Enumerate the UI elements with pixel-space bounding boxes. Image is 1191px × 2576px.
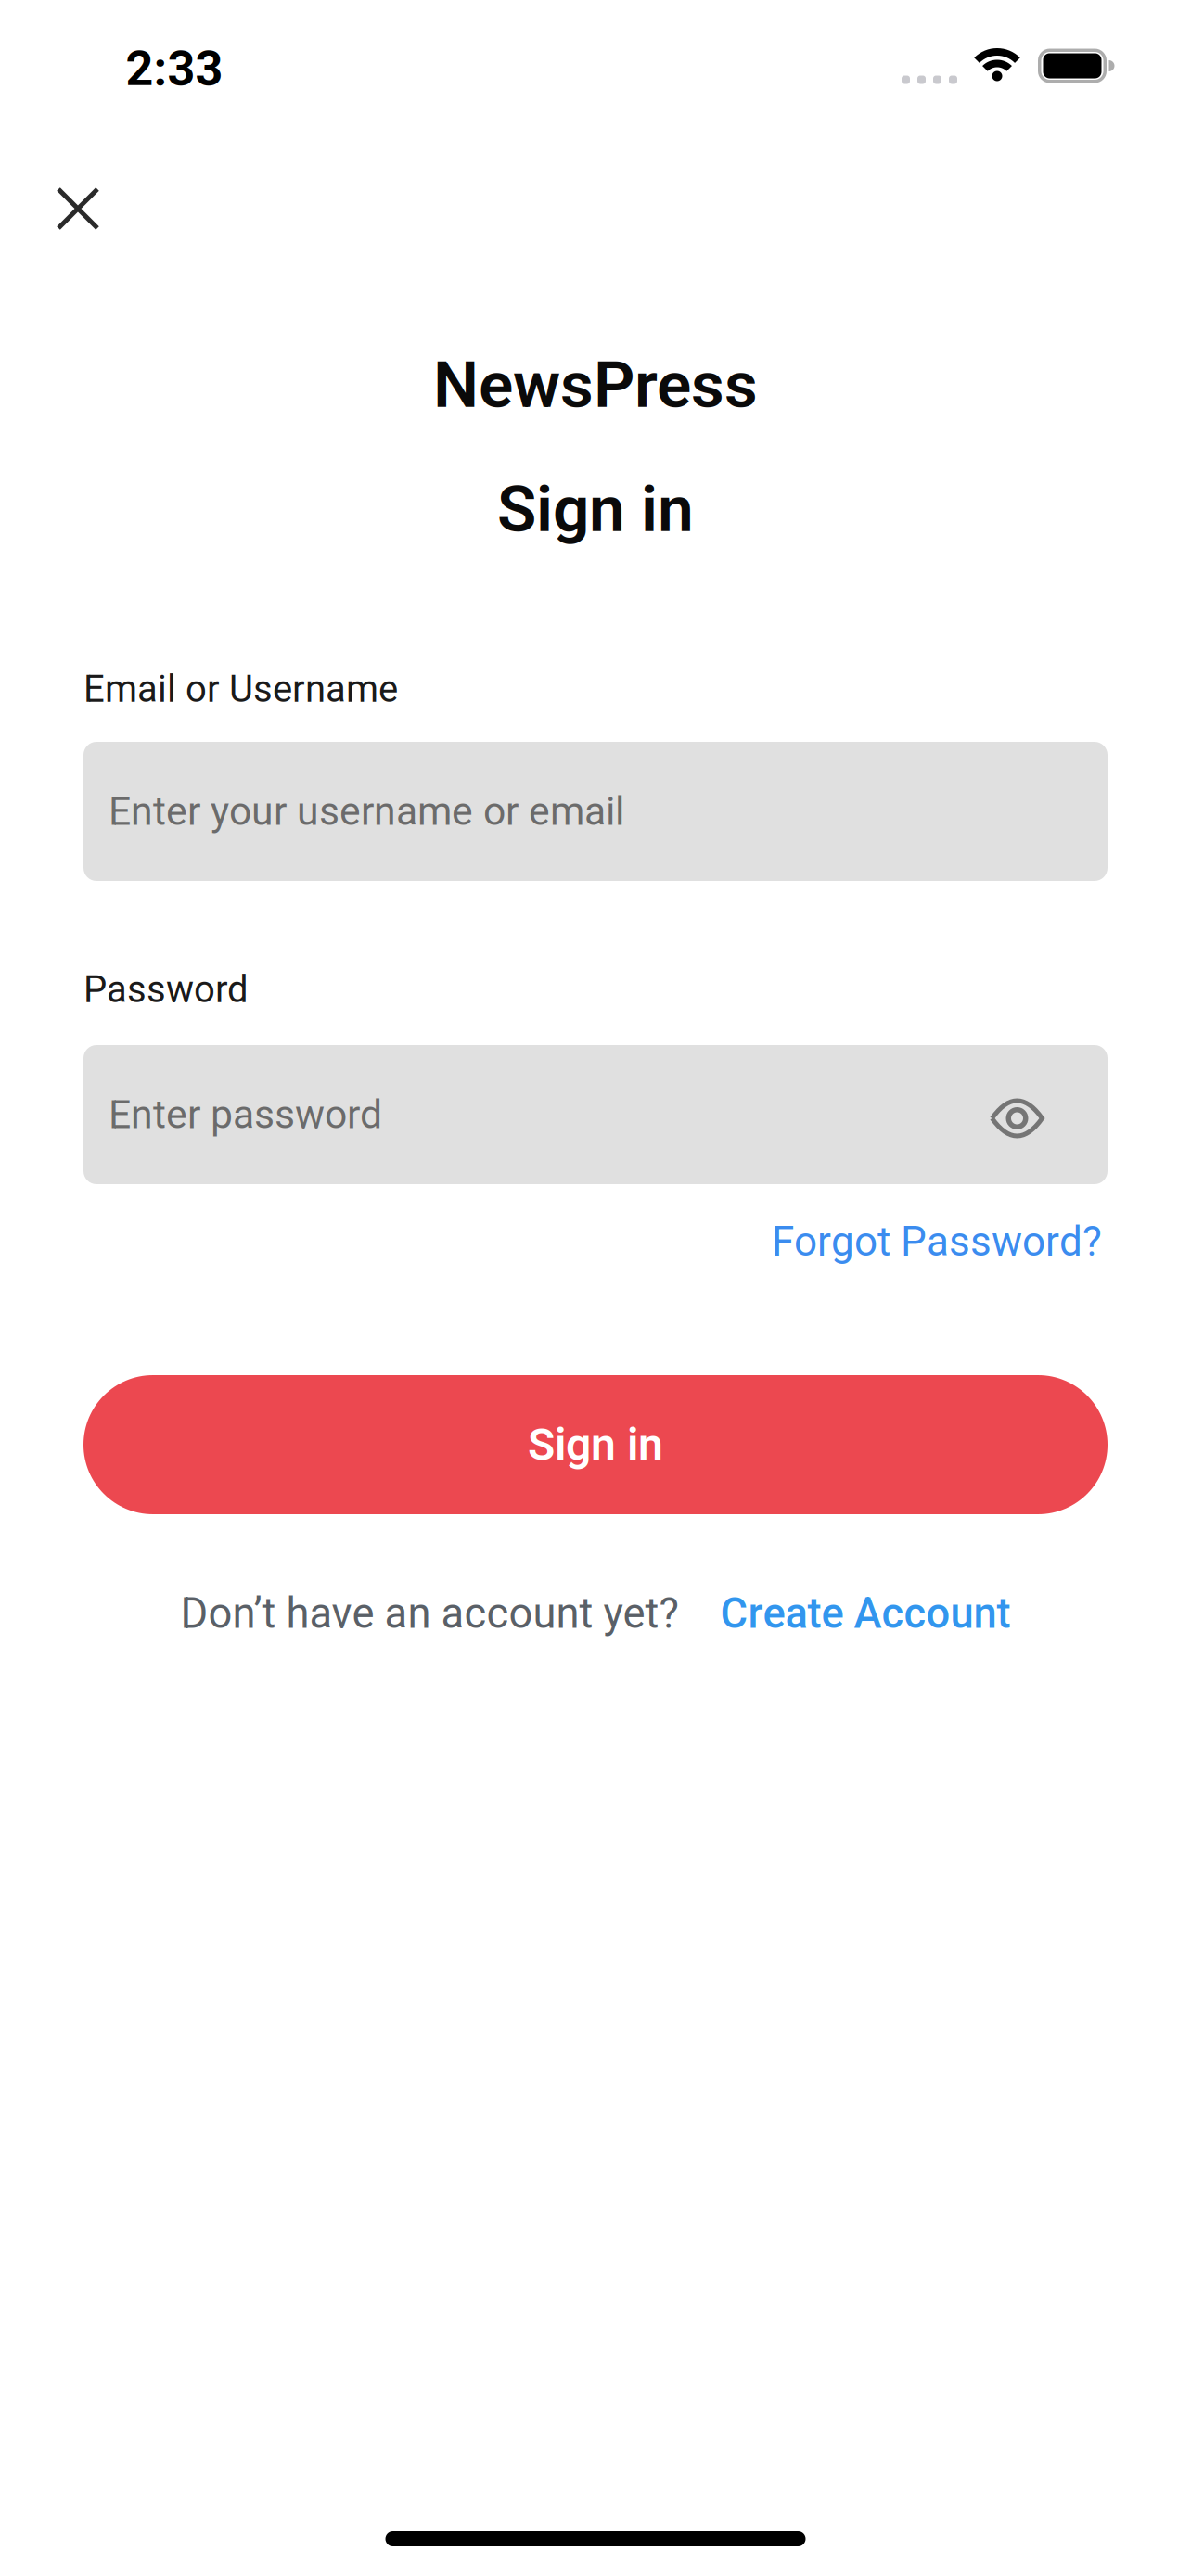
staticText: Enter your username or email	[109, 789, 624, 834]
staticText: Don’t have an account yet?	[180, 1589, 679, 1637]
staticText: Password	[83, 968, 249, 1011]
staticText: NewsPress	[433, 348, 758, 422]
staticText: 2:33	[126, 41, 223, 96]
staticText: Email or Username	[83, 668, 398, 710]
button[interactable]: Forgot Password?	[772, 1218, 1102, 1265]
staticText: Sign in	[528, 1419, 663, 1470]
button[interactable]: Enter password	[83, 1045, 1108, 1184]
staticText: Create Account	[720, 1589, 1011, 1637]
staticText: Enter password	[109, 1092, 382, 1137]
button[interactable]: Sign in	[83, 1375, 1108, 1514]
staticText: Forgot Password?	[772, 1218, 1102, 1265]
button[interactable]: Create Account	[720, 1589, 1011, 1637]
staticText: Sign in	[497, 472, 694, 546]
button[interactable]	[56, 186, 100, 231]
button[interactable]: Enter your username or email	[83, 742, 1108, 881]
